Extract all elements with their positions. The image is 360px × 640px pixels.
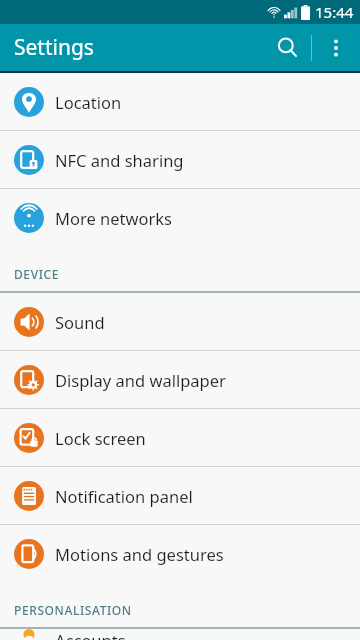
staticText: Settings [14,33,94,62]
staticText: More networks [55,207,172,229]
button[interactable]: Location [0,73,360,130]
staticText: Location [55,91,122,113]
staticText: Motions and gestures [55,543,224,565]
button[interactable]: Sound [0,293,360,350]
staticText: Accounts [55,629,126,640]
button[interactable]: NFC and sharing [0,131,360,188]
staticText: NFC and sharing [55,149,184,171]
button[interactable]: Display and wallpaper [0,351,360,408]
staticText: Lock screen [55,427,146,449]
staticText: Sound [55,311,105,333]
staticText: Display and wallpaper [55,369,226,391]
button[interactable]: Search [263,24,311,71]
staticText: PERSONALISATION [14,602,132,618]
button[interactable]: Lock screen [0,409,360,466]
staticText: DEVICE [14,266,59,282]
staticText: 15:44 [315,2,354,22]
button[interactable]: Accounts [0,629,360,640]
button[interactable]: More networks [0,189,360,246]
button[interactable]: Notification panel [0,467,360,524]
button[interactable]: Motions and gestures [0,525,360,582]
button[interactable]: More options [312,24,360,71]
staticText: Notification panel [55,485,193,507]
